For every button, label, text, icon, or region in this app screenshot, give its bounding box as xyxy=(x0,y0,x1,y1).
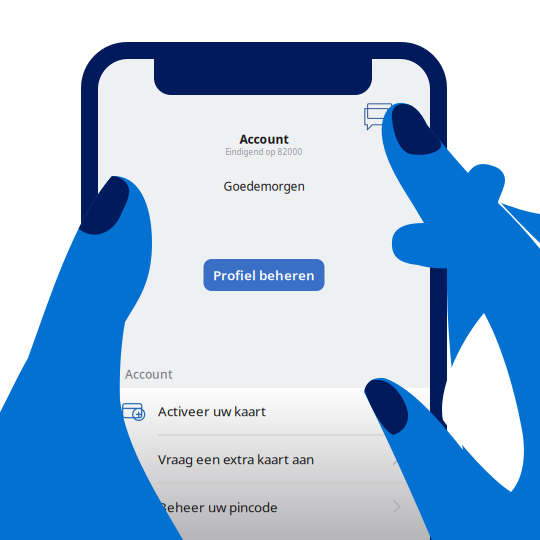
button[interactable] xyxy=(98,387,430,435)
staticText: Profiel beheren xyxy=(213,266,315,284)
button[interactable]: Profiel beheren xyxy=(203,259,324,291)
button[interactable]: Messages xyxy=(364,103,396,131)
staticText: Beheer uw pincode xyxy=(158,498,278,516)
staticText: Activeer uw kaart xyxy=(158,402,266,420)
button[interactable] xyxy=(98,483,430,531)
staticText: Account xyxy=(239,131,288,147)
button[interactable] xyxy=(98,435,430,483)
staticText: Goedemorgen xyxy=(223,178,304,194)
staticText: Vraag een extra kaart aan xyxy=(158,450,314,468)
staticText: Eindigend op 82000 xyxy=(225,147,302,157)
staticText: Account xyxy=(125,366,173,382)
